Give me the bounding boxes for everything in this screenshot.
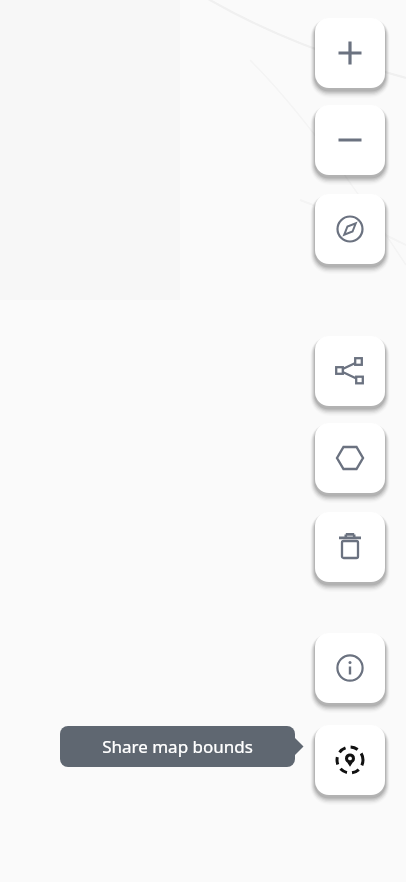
button[interactable]: Information [315, 633, 385, 703]
button[interactable]: Zoom in [315, 18, 385, 88]
button[interactable]: Share map bounds [315, 725, 385, 795]
button[interactable]: Share map bounds [60, 726, 305, 767]
button[interactable]: Share route [315, 336, 385, 406]
button[interactable]: Draw polygon [315, 423, 385, 493]
button[interactable]: Delete [315, 512, 385, 582]
button[interactable]: Zoom out [315, 105, 385, 175]
button[interactable]: Compass, reset bearing [315, 194, 385, 264]
staticText: Share map bounds [102, 735, 253, 758]
